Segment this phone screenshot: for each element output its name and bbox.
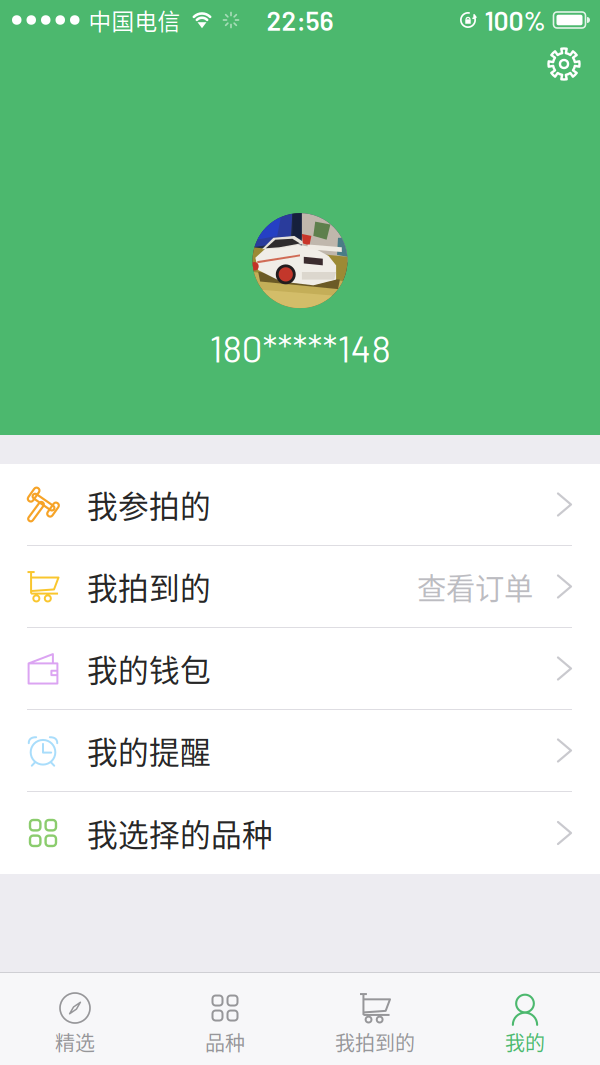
staticText: 精选 xyxy=(55,1027,95,1056)
button[interactable]: 我的提醒 xyxy=(0,710,600,792)
staticText: 我的提醒 xyxy=(87,728,211,773)
button[interactable]: 我选择的品种 xyxy=(0,792,600,874)
button[interactable]: Settings xyxy=(535,40,593,88)
button[interactable]: 我参拍的 xyxy=(0,464,600,546)
staticText: 100% xyxy=(484,4,545,36)
button[interactable]: 我的钱包 xyxy=(0,628,600,710)
button[interactable]: 精选 xyxy=(0,973,150,1065)
staticText: 我拍到的 xyxy=(87,564,211,609)
staticText: 中国电信 xyxy=(88,4,180,36)
staticText: 查看订单 xyxy=(417,565,533,608)
staticText: 我参拍的 xyxy=(87,482,211,527)
button[interactable]: 我的 xyxy=(450,973,600,1065)
staticText: 22:56 xyxy=(266,4,333,36)
button[interactable]: 我拍到的 xyxy=(0,546,600,628)
staticText: 我的钱包 xyxy=(87,646,211,691)
button[interactable]: 品种 xyxy=(150,973,300,1065)
staticText: 品种 xyxy=(205,1027,245,1056)
staticText: 我选择的品种 xyxy=(87,811,273,855)
staticText: 我的 xyxy=(505,1027,545,1056)
staticText: 我拍到的 xyxy=(335,1027,415,1056)
staticText: 180*****148 xyxy=(209,325,390,370)
button[interactable]: 我拍到的 xyxy=(300,973,450,1065)
